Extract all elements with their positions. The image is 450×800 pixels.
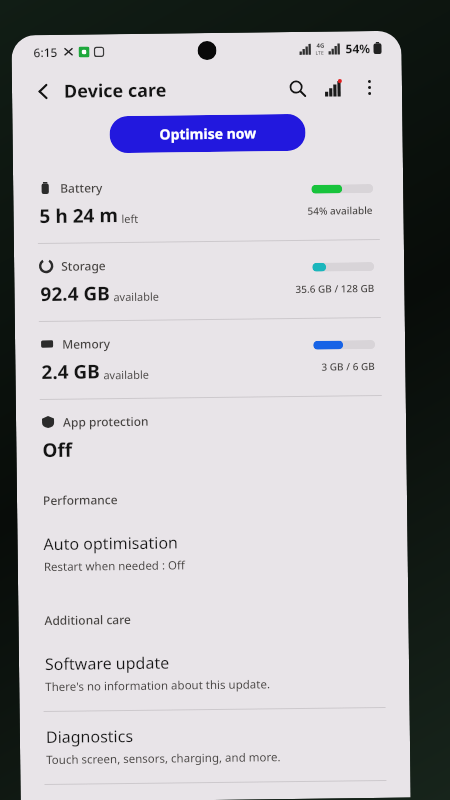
- staticText: Software update: [45, 651, 170, 675]
- staticText: LTE: [315, 50, 325, 57]
- button[interactable]: Usage statistics: [316, 70, 350, 105]
- staticText: available: [110, 289, 160, 304]
- staticText: Touch screen, sensors, charging, and mor…: [46, 749, 281, 768]
- staticText: 54% available: [307, 203, 374, 218]
- staticText: Memory: [62, 335, 111, 352]
- staticText: 3 GB / 6 GB: [321, 359, 375, 374]
- button[interactable]: Maintenance mode: [20, 781, 411, 800]
- button[interactable]: Back: [26, 74, 60, 108]
- staticText: There's no information about this update…: [45, 676, 270, 695]
- staticText: Optimise now: [159, 123, 257, 144]
- staticText: 5 h 24 m: [39, 202, 119, 229]
- staticText: Additional care: [44, 611, 132, 628]
- button[interactable]: Diagnostics: [20, 708, 410, 784]
- staticText: 92.4 GB: [40, 280, 111, 307]
- staticText: 2.4 GB: [41, 358, 101, 385]
- staticText: Device care: [64, 77, 167, 104]
- staticText: 54%: [345, 40, 371, 56]
- staticText: 4G: [316, 42, 324, 50]
- button[interactable]: Battery: [13, 162, 404, 243]
- staticText: Battery: [60, 179, 103, 196]
- staticText: 35.6 GB / 128 GB: [295, 281, 375, 296]
- staticText: Restart when needed : Off: [44, 557, 186, 575]
- button[interactable]: More options: [352, 70, 386, 104]
- staticText: left: [118, 211, 139, 226]
- button[interactable]: App protection: [16, 396, 407, 477]
- button[interactable]: Memory: [15, 318, 406, 399]
- staticText: Off: [42, 437, 72, 463]
- staticText: Auto optimisation: [43, 531, 179, 555]
- staticText: Diagnostics: [46, 725, 134, 748]
- staticText: Storage: [61, 257, 106, 274]
- button[interactable]: Optimise now: [109, 114, 306, 153]
- staticText: App protection: [63, 413, 149, 430]
- button[interactable]: Software update: [19, 635, 410, 711]
- button[interactable]: Search: [280, 71, 314, 105]
- button[interactable]: Storage: [14, 240, 405, 321]
- staticText: Performance: [43, 491, 118, 508]
- button[interactable]: Auto optimisation: [17, 515, 408, 591]
- staticText: available: [100, 367, 150, 382]
- staticText: 6:15: [33, 44, 58, 60]
